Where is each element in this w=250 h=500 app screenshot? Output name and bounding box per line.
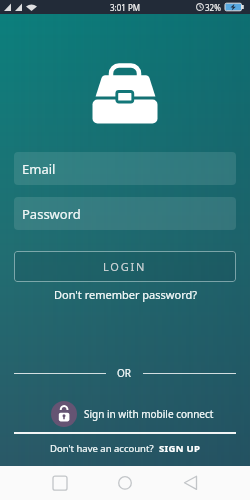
staticText: Don't have an account? [50,442,154,455]
button[interactable] [84,466,167,500]
staticText: Email [22,160,56,178]
button[interactable] [0,466,84,500]
button[interactable]: Sign in with mobile connect [51,400,214,427]
staticText: Don't remember password? [54,287,197,302]
staticText: 3:01 PM [110,2,141,13]
button[interactable]: Email [14,152,236,185]
button[interactable]: LOGIN [14,251,236,282]
staticText: Sign in with mobile connect [84,407,214,421]
staticText: LOGIN [103,259,147,274]
staticText: Password [22,205,81,223]
staticText: OR [117,366,132,380]
button[interactable]: Don't remember password? [0,286,250,303]
button[interactable]: SIGN UP [159,442,201,455]
button[interactable]: Password [14,197,236,230]
staticText: SIGN UP [159,442,201,455]
staticText: 32% [205,2,221,13]
button[interactable] [167,466,250,500]
